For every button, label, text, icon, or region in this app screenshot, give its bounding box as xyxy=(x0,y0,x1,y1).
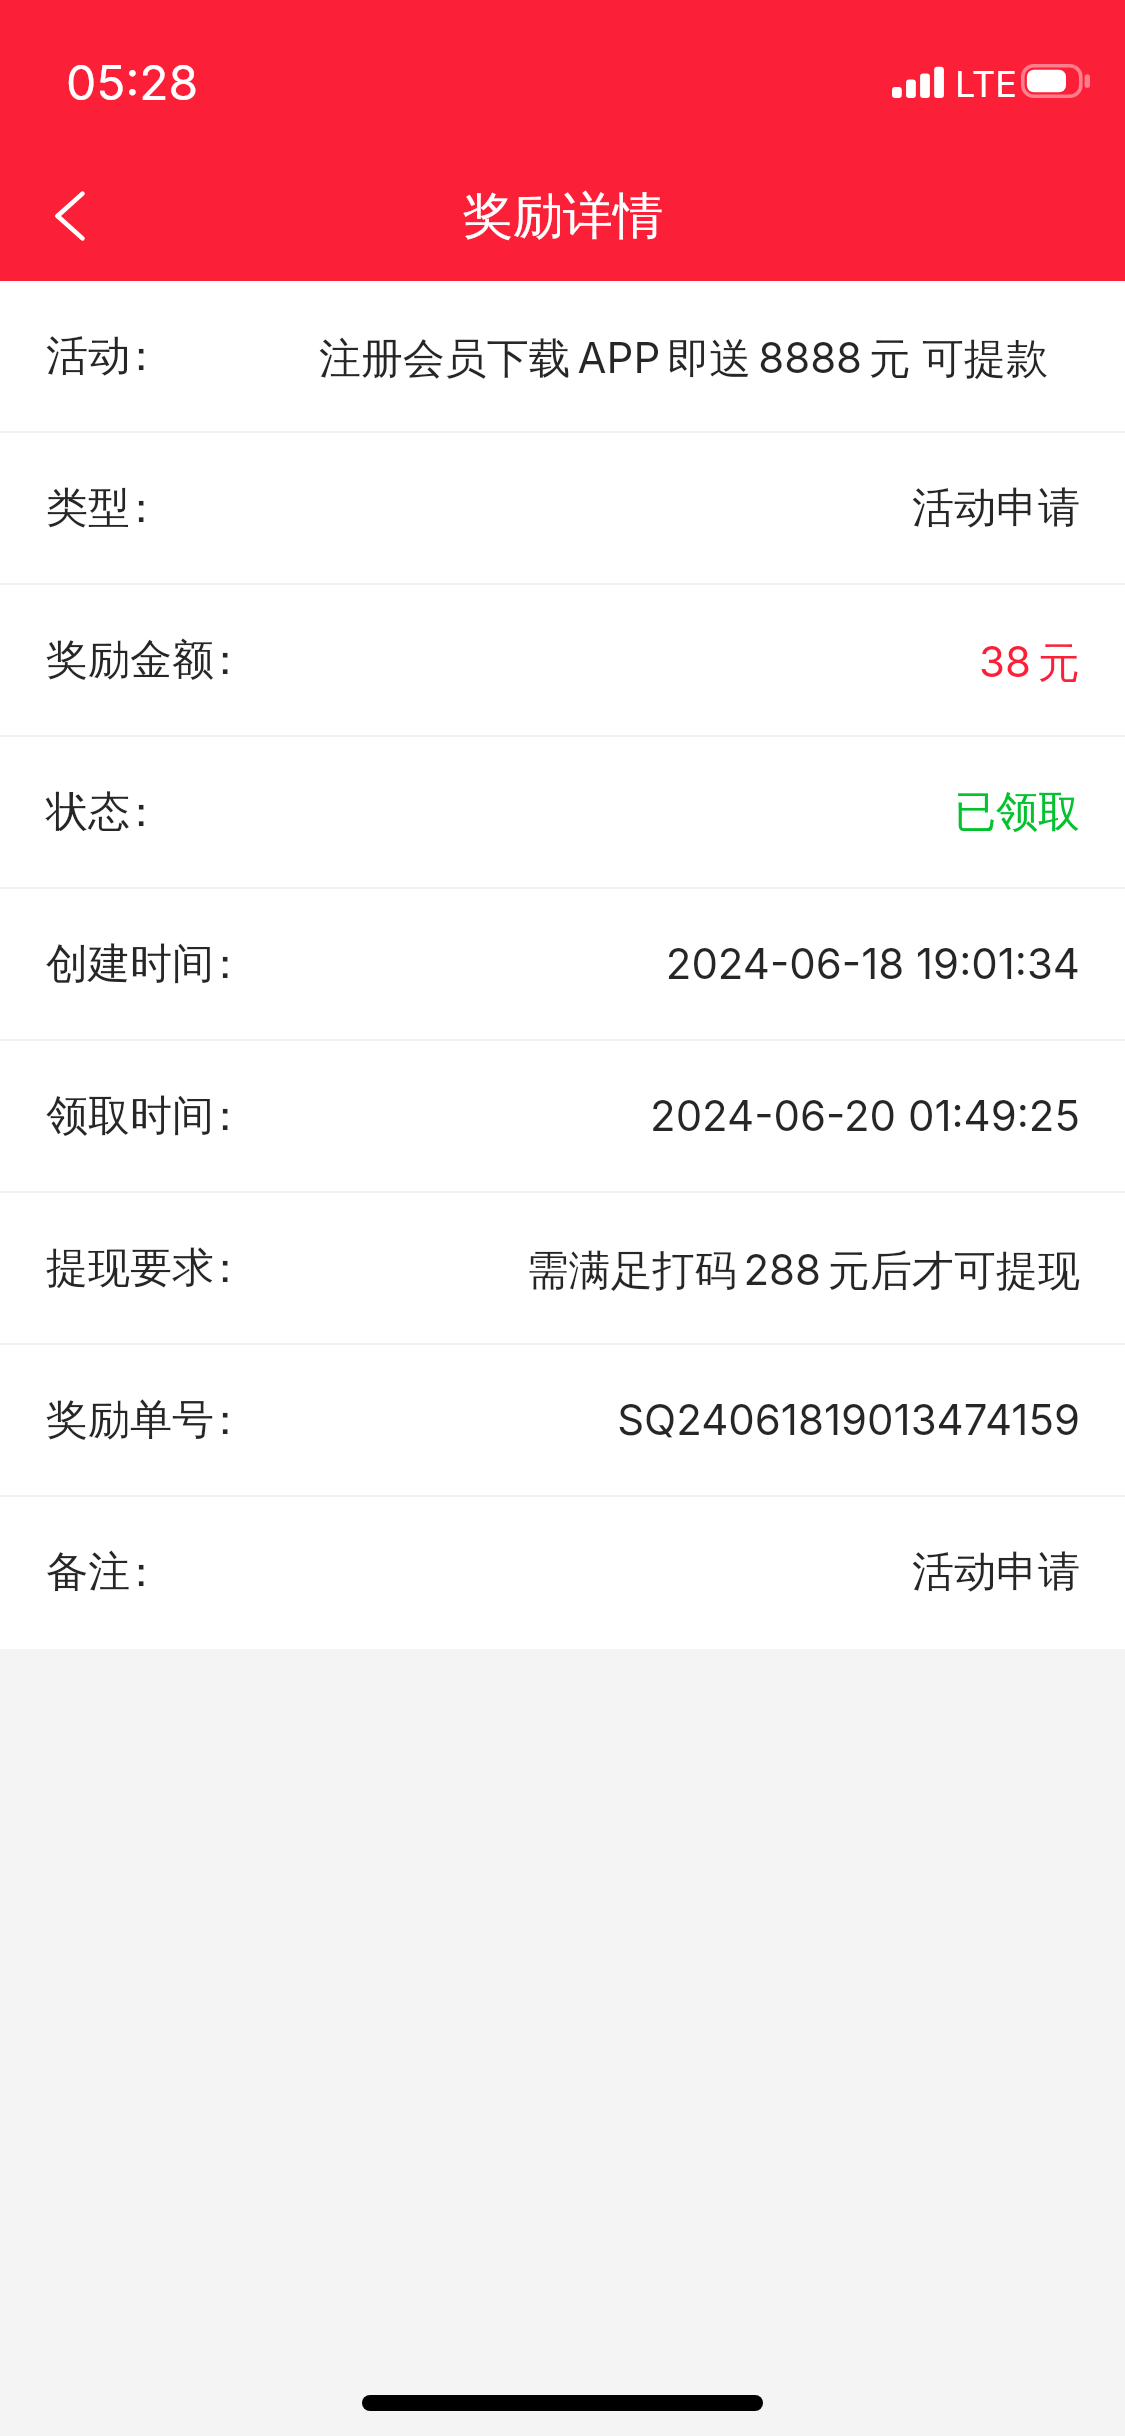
staticText: LTE xyxy=(955,62,1017,106)
button[interactable]: 类型 xyxy=(0,433,1125,585)
staticText: 注册会员下载 APP 即送 8888 元 可提款 xyxy=(182,328,1048,385)
staticText: SQ24061819013474159 xyxy=(266,1394,1080,1445)
staticText: ： xyxy=(204,1394,246,1447)
staticText: ： xyxy=(204,634,246,687)
staticText: 奖励详情 xyxy=(463,185,663,248)
staticText: 已领取 xyxy=(182,786,1080,839)
staticText: 活动申请 xyxy=(182,482,1080,535)
staticText: 类型 xyxy=(46,482,130,535)
staticText: 05:28 xyxy=(66,53,199,111)
button[interactable]: 备注 xyxy=(0,1497,1125,1649)
staticText: ： xyxy=(120,786,162,839)
staticText: 奖励金额 xyxy=(46,634,214,687)
staticText: 提现要求 xyxy=(46,1242,214,1295)
staticText: 奖励单号 xyxy=(46,1394,214,1447)
staticText: 创建时间 xyxy=(46,938,214,991)
button[interactable]: 领取时间 xyxy=(0,1041,1125,1193)
staticText: 状态 xyxy=(46,786,130,839)
staticText: 活动 xyxy=(46,330,130,383)
staticText: 2024-06-20 01:49:25 xyxy=(266,1090,1080,1141)
staticText: 需满足打码 288 元后才可提现 xyxy=(266,1240,1080,1297)
button[interactable]: 创建时间 xyxy=(0,889,1125,1041)
staticText: ： xyxy=(204,938,246,991)
button[interactable]: 状态 xyxy=(0,737,1125,889)
staticText: ： xyxy=(120,330,162,383)
staticText: ： xyxy=(120,482,162,535)
button[interactable]: 提现要求 xyxy=(0,1193,1125,1345)
staticText: 备注 xyxy=(46,1546,130,1599)
staticText: 2024-06-18 19:01:34 xyxy=(266,938,1080,989)
staticText: 领取时间 xyxy=(46,1090,214,1143)
staticText: ： xyxy=(204,1242,246,1295)
button[interactable]: Back xyxy=(24,166,116,266)
staticText: ： xyxy=(204,1090,246,1143)
button[interactable]: 奖励金额 xyxy=(0,585,1125,737)
staticText: 38 元 xyxy=(266,632,1080,689)
button[interactable]: 活动 xyxy=(0,281,1125,433)
staticText: ： xyxy=(120,1546,162,1599)
button[interactable]: 奖励单号 xyxy=(0,1345,1125,1497)
staticText: 活动申请 xyxy=(182,1546,1080,1599)
